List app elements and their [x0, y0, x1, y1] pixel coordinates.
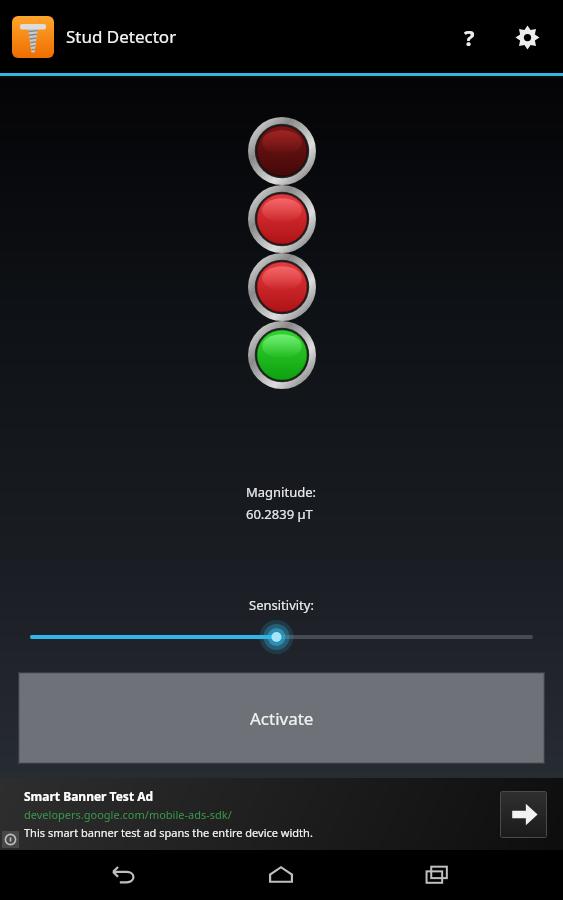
button[interactable]: Indicator light	[248, 253, 316, 321]
staticText: Magnitude:	[246, 483, 317, 501]
button[interactable]: Settings	[503, 13, 551, 61]
button[interactable]: Back	[92, 850, 156, 900]
button[interactable]: Indicator light	[248, 185, 316, 253]
button[interactable]: App icon	[12, 16, 54, 58]
button[interactable]: Activate	[18, 672, 545, 764]
staticText: Smart Banner Test Ad	[24, 788, 154, 804]
button[interactable]: Open ad	[500, 791, 547, 838]
button[interactable]: Ad info	[2, 831, 19, 848]
button[interactable]: Indicator light	[248, 117, 316, 185]
staticText: 60.2839 µT	[246, 505, 313, 523]
staticText: developers.google.com/mobile-ads-sdk/	[24, 807, 232, 822]
staticText: ?	[464, 22, 475, 52]
staticText: Activate	[250, 707, 314, 730]
button[interactable]: Indicator light	[248, 321, 316, 389]
staticText: This smart banner test ad spans the enti…	[24, 825, 313, 840]
button[interactable]: Home	[249, 850, 313, 900]
staticText: Sensitivity:	[249, 596, 314, 614]
button[interactable]: Smart Banner Test Ad	[0, 778, 563, 850]
button[interactable]: Recent apps	[406, 850, 470, 900]
button[interactable]: Sensitivity slider	[30, 620, 533, 654]
button[interactable]: Help	[445, 13, 493, 61]
staticText: Stud Detector	[66, 25, 177, 48]
